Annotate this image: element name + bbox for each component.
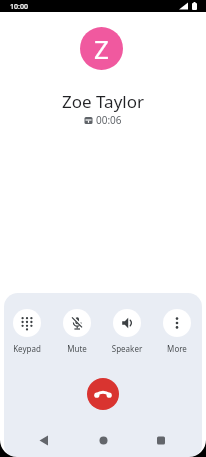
staticText: Z <box>94 31 109 66</box>
button[interactable] <box>113 309 141 337</box>
button[interactable] <box>163 309 191 337</box>
staticText: 10:00 <box>10 2 28 12</box>
button[interactable] <box>87 378 119 410</box>
staticText: Speaker <box>103 343 151 354</box>
staticText: More <box>153 343 201 354</box>
staticText: Keypad <box>3 343 51 354</box>
button[interactable] <box>63 309 91 337</box>
button[interactable] <box>13 309 41 337</box>
staticText: Mute <box>53 343 101 354</box>
staticText: Zoe Taylor <box>62 90 145 113</box>
staticText: 00:06 <box>96 113 122 127</box>
